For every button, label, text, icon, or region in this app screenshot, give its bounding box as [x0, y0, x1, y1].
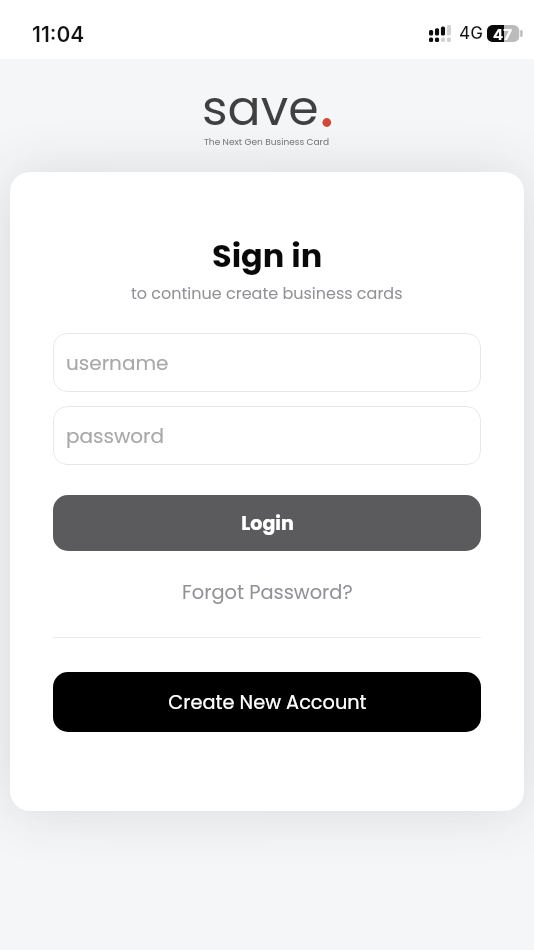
- button[interactable]: Create New Account: [53, 672, 481, 732]
- button[interactable]: Forgot Password?: [172, 573, 363, 612]
- staticText: 4G: [459, 23, 483, 44]
- staticText: 47: [493, 25, 512, 42]
- staticText: Forgot Password?: [182, 579, 353, 606]
- staticText: Sign in: [212, 233, 323, 278]
- staticText: Login: [241, 510, 294, 537]
- staticText: save: [202, 74, 319, 143]
- button[interactable]: password: [53, 406, 481, 465]
- staticText: username: [66, 349, 169, 377]
- other: Battery 47 percent: [487, 25, 523, 42]
- staticText: The Next Gen Business Card: [204, 136, 330, 149]
- button[interactable]: username: [53, 333, 481, 392]
- staticText: 11:04: [32, 22, 85, 47]
- button[interactable]: Login: [53, 495, 481, 551]
- other: Signal strength: [429, 25, 451, 42]
- staticText: Create New Account: [168, 689, 367, 716]
- staticText: password: [66, 422, 165, 450]
- staticText: to continue create business cards: [131, 282, 403, 304]
